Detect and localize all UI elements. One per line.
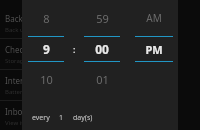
button[interactable]: PM	[130, 37, 178, 61]
button[interactable]: 9	[22, 37, 70, 61]
button[interactable]: 10	[22, 62, 70, 96]
staticText: :	[73, 43, 76, 55]
button[interactable]: 59	[78, 0, 126, 36]
staticText: 01	[96, 72, 109, 87]
staticText: every	[32, 113, 50, 123]
button[interactable]: 00	[78, 37, 126, 61]
button[interactable]: Backup	[0, 8, 200, 38]
button[interactable]: Inbox	[0, 101, 200, 130]
staticText: Back up data	[5, 26, 42, 34]
button[interactable]: 01	[78, 62, 126, 96]
staticText: PM	[145, 42, 163, 57]
staticText: day(s)	[73, 113, 93, 123]
staticText: Inbox	[5, 106, 27, 117]
button[interactable]: 8	[22, 0, 70, 36]
button[interactable]: Check	[0, 39, 200, 69]
button[interactable]: 1	[59, 113, 64, 123]
button[interactable]: AM	[130, 0, 178, 36]
staticText: 8	[43, 11, 50, 26]
staticText: Check	[5, 44, 28, 55]
staticText: Battery usage	[5, 88, 45, 96]
staticText: 00	[95, 41, 109, 57]
staticText: AM	[146, 11, 162, 25]
button[interactable]: Interval	[0, 70, 200, 100]
staticText: Storage	[5, 57, 27, 65]
staticText: Interval	[5, 75, 34, 86]
staticText: 9	[43, 41, 50, 57]
staticText: 1	[59, 113, 64, 123]
staticText: 10	[40, 72, 53, 87]
button[interactable]: day(s)	[73, 113, 93, 123]
staticText: Backup	[5, 13, 33, 24]
staticText: View items	[5, 119, 36, 127]
staticText: 59	[96, 11, 109, 26]
